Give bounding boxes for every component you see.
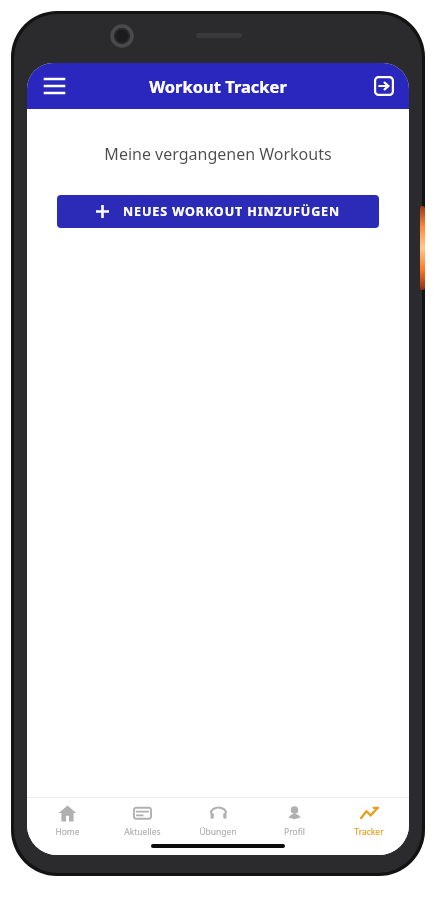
button[interactable]: Tracker [333,802,405,840]
staticText: Tracker [354,826,384,838]
button[interactable]: Logout [368,70,400,102]
button[interactable]: NEUES WORKOUT HINZUFÜGEN [57,195,379,228]
staticText: Meine vergangenen Workouts [104,143,332,165]
staticText: Aktuelles [124,826,161,838]
staticText: Home [55,826,80,838]
staticText: NEUES WORKOUT HINZUFÜGEN [123,203,341,220]
staticText: Profil [284,826,305,838]
button[interactable]: Menu [37,69,71,103]
button[interactable]: Home [31,802,103,840]
button[interactable]: Aktuelles [106,802,178,840]
staticText: Übungen [199,826,237,838]
button[interactable]: Übungen [182,802,254,840]
button[interactable]: Profil [258,802,330,840]
staticText: Workout Tracker [149,75,287,97]
